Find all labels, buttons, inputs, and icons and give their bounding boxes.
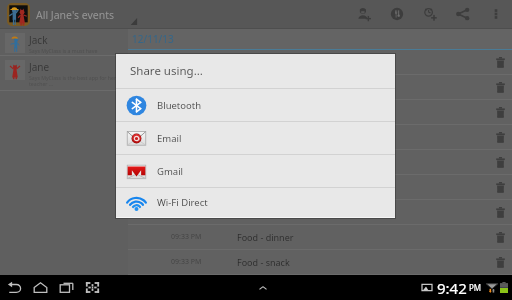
- staticText: 09:33 PM: [171, 82, 202, 92]
- button[interactable]: 09:33 PM: [128, 200, 512, 224]
- button[interactable]: 09:33 PM: [128, 225, 512, 249]
- staticText: Food - dinner: [237, 231, 294, 243]
- staticText: Share using…: [130, 63, 203, 79]
- button[interactable]: Food: [380, 0, 413, 28]
- button[interactable]: Delete: [488, 100, 512, 124]
- button[interactable]: Delete: [488, 75, 512, 99]
- button[interactable]: Gmail: [116, 155, 395, 187]
- staticText: PM: [469, 282, 482, 293]
- staticText: 9:42: [437, 278, 467, 298]
- staticText: Says MyClass is the best app for her tea…: [29, 74, 117, 88]
- button[interactable]: Delete: [488, 225, 512, 249]
- button[interactable]: More options: [479, 0, 512, 28]
- button[interactable]: Delete: [488, 250, 512, 274]
- button[interactable]: Add alarm: [413, 0, 446, 28]
- button[interactable]: 09:33 PM: [128, 125, 512, 149]
- staticText: 09:33 PM: [171, 182, 202, 192]
- staticText: Email: [157, 132, 182, 145]
- button[interactable]: Bluetooth: [116, 89, 395, 121]
- staticText: Bluetooth: [157, 99, 202, 112]
- button[interactable]: Delete: [488, 175, 512, 199]
- staticText: Jane: [29, 60, 50, 74]
- button[interactable]: Expand: [251, 275, 275, 300]
- button[interactable]: Email: [116, 122, 395, 154]
- staticText: Says MyClass is a must have: [29, 47, 98, 54]
- button[interactable]: Dropdown: [127, 0, 138, 28]
- staticText: Food - lunch: [237, 206, 290, 218]
- staticText: Wi-Fi Direct: [157, 196, 208, 209]
- staticText: 09:33 PM: [171, 232, 202, 242]
- button[interactable]: 09:33 PM: [128, 50, 512, 74]
- staticText: Food - snack: [237, 256, 290, 268]
- button[interactable]: Delete: [488, 150, 512, 174]
- staticText: Food - snack: [237, 81, 290, 93]
- button[interactable]: 09:33 PM: [128, 175, 512, 199]
- staticText: 09:33 PM: [171, 132, 202, 142]
- staticText: Gmail: [157, 165, 184, 178]
- staticText: 09:33 PM: [171, 107, 202, 117]
- staticText: 12/11/13: [132, 32, 174, 46]
- staticText: 09:33 PM: [171, 257, 202, 267]
- button[interactable]: 09:33 PM: [128, 75, 512, 99]
- button[interactable]: Share: [446, 0, 479, 28]
- button[interactable]: Home: [27, 275, 53, 300]
- button[interactable]: Delete: [488, 125, 512, 149]
- button[interactable]: All Jane's events: [0, 3, 115, 26]
- button[interactable]: Wi-Fi Direct: [116, 188, 395, 217]
- button[interactable]: Delete: [488, 200, 512, 224]
- button[interactable]: Delete: [488, 50, 512, 74]
- staticText: Jack: [29, 33, 48, 47]
- button[interactable]: 09:33 PM: [128, 250, 512, 274]
- staticText: All Jane's events: [36, 8, 115, 22]
- staticText: Food - snack: [237, 181, 290, 193]
- button[interactable]: 12/11/13: [128, 29, 512, 49]
- button[interactable]: Back: [1, 275, 27, 300]
- button[interactable]: Jack: [0, 29, 128, 55]
- button[interactable]: Jane: [0, 56, 128, 90]
- button[interactable]: Recents: [53, 275, 79, 300]
- button[interactable]: 09:33 PM: [128, 100, 512, 124]
- button[interactable]: 09:33 PM: [128, 150, 512, 174]
- button[interactable]: Add person: [347, 0, 380, 28]
- button[interactable]: Fullscreen: [79, 275, 105, 300]
